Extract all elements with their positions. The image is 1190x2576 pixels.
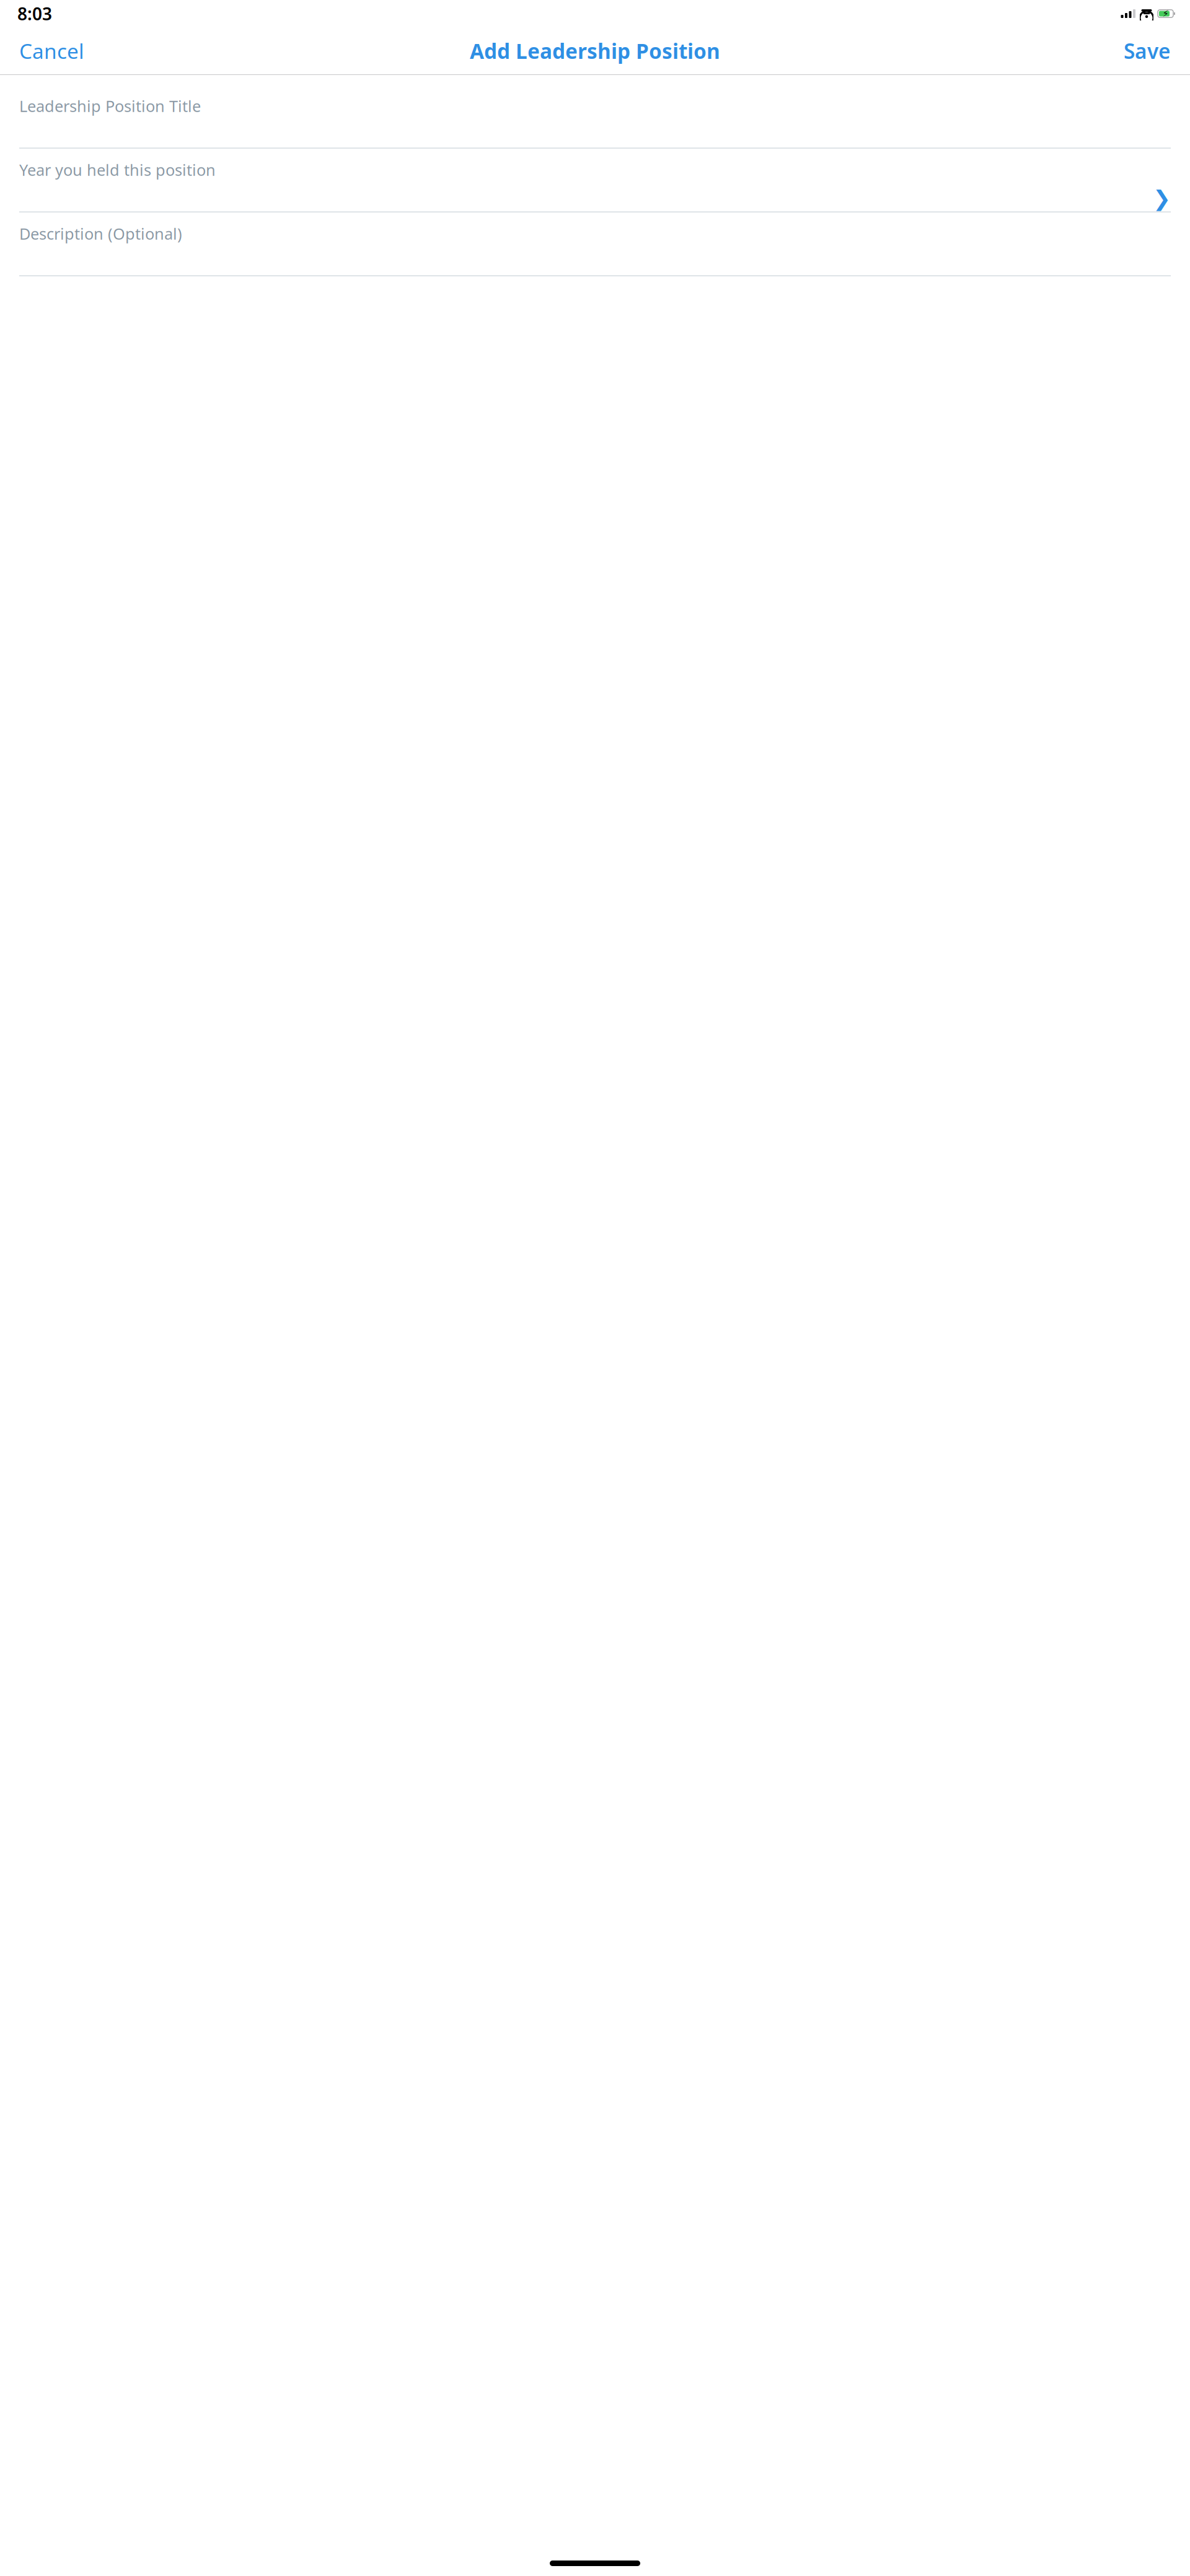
staticText: Cancel	[19, 37, 84, 65]
button[interactable]: Cancel	[19, 32, 84, 70]
staticText: ❯	[1153, 186, 1171, 211]
button[interactable]: Year you held this position	[0, 154, 1190, 213]
staticText: Leadership Position Title	[19, 96, 201, 116]
button[interactable]: Save	[1124, 32, 1171, 70]
staticText: Description (Optional)	[19, 223, 182, 244]
staticText: Save	[1124, 37, 1171, 65]
staticText: Add Leadership Position	[470, 37, 720, 65]
staticText: Year you held this position	[19, 159, 216, 180]
staticText: ⚡︎	[1162, 8, 1169, 19]
staticText: 8:03	[17, 2, 52, 25]
